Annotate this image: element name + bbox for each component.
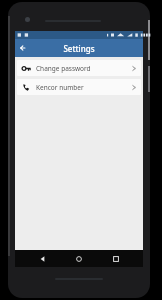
button[interactable]: Back bbox=[32, 250, 52, 267]
staticText: Change password bbox=[36, 64, 91, 73]
button[interactable]: Change password bbox=[17, 60, 141, 76]
button[interactable]: Recent apps bbox=[106, 250, 126, 267]
staticText: Settings bbox=[63, 43, 95, 54]
staticText: Kencor number bbox=[36, 83, 84, 92]
button[interactable]: Back bbox=[16, 40, 32, 56]
button[interactable]: Kencor number bbox=[17, 79, 141, 95]
button[interactable]: Home bbox=[69, 250, 89, 267]
